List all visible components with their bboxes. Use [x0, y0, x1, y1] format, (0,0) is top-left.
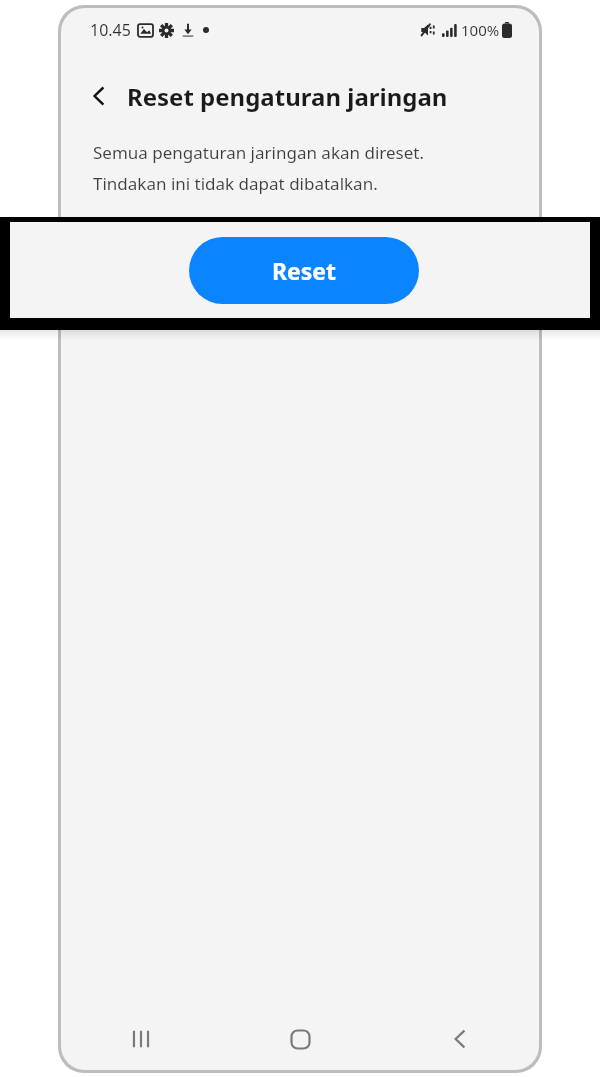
staticText: Tindakan ini tidak dapat dibatalkan.	[93, 172, 378, 195]
button[interactable]: Reset	[189, 237, 419, 304]
button[interactable]: Back	[77, 74, 121, 118]
staticText: 100%	[461, 20, 500, 40]
button[interactable]: Back	[380, 1008, 539, 1070]
staticText: Reset pengaturan jaringan	[127, 80, 448, 113]
staticText: 10.45	[90, 19, 131, 41]
button[interactable]: Recent apps	[61, 1008, 221, 1070]
staticText: Reset	[272, 255, 337, 286]
staticText: Semua pengaturan jaringan akan direset.	[93, 141, 424, 164]
button[interactable]: Home	[221, 1008, 380, 1070]
